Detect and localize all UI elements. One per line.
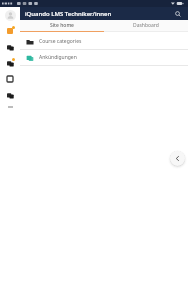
button[interactable]: Navigation item bbox=[4, 73, 16, 85]
button[interactable]: Navigation item bbox=[4, 57, 16, 69]
staticText: Course categories bbox=[39, 38, 82, 45]
staticText: Site home bbox=[50, 22, 74, 29]
button[interactable]: Navigation item bbox=[4, 41, 16, 53]
staticText: iQuando LMS Techniker/innen bbox=[25, 10, 112, 18]
staticText: Dashboard bbox=[133, 22, 159, 29]
button[interactable]: Navigation item bbox=[4, 89, 16, 101]
button[interactable]: Dashboard bbox=[104, 20, 188, 31]
button[interactable]: Site home bbox=[20, 20, 104, 31]
button[interactable]: Search bbox=[172, 8, 184, 20]
button[interactable]: Collapse panel bbox=[170, 151, 185, 166]
staticText: Ankündigungen bbox=[39, 54, 77, 61]
button[interactable]: Profile bbox=[5, 10, 16, 21]
button[interactable]: Navigation item bbox=[4, 25, 16, 37]
button[interactable]: Ankündigungen bbox=[20, 50, 188, 65]
button[interactable]: Course categories bbox=[20, 34, 188, 49]
